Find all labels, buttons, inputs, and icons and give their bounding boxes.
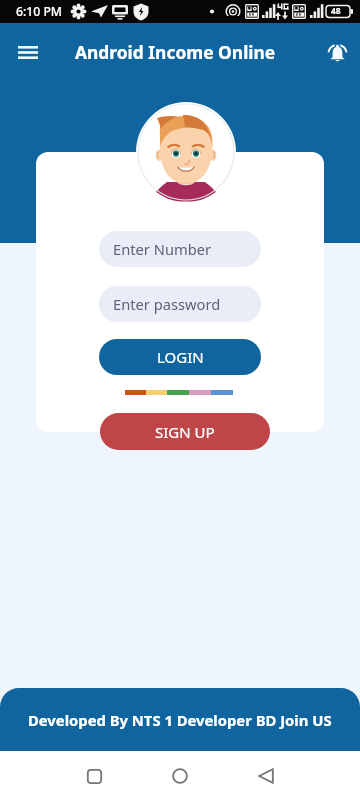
button[interactable]: Open navigation menu (9, 33, 47, 71)
staticText: 6:10 PM (16, 3, 63, 20)
staticText: LOGIN (157, 347, 204, 367)
button[interactable]: SIGN UP (100, 413, 270, 450)
button[interactable]: Developed By NTS 1 Developer BD Join US (0, 688, 360, 751)
staticText: 48 (331, 5, 341, 17)
button[interactable]: LOGIN (99, 339, 261, 375)
staticText: SIGN UP (155, 422, 215, 442)
button[interactable]: Notifications (318, 33, 356, 71)
button[interactable]: Back (246, 756, 286, 796)
button[interactable]: Enter password (99, 286, 261, 322)
button[interactable]: Recent apps (74, 756, 114, 796)
staticText: Enter Number (113, 239, 212, 259)
staticText: Android Income Online (75, 40, 276, 64)
button[interactable]: Home (160, 756, 200, 796)
staticText: Developed By NTS 1 Developer BD Join US (28, 710, 332, 730)
staticText: Enter password (113, 294, 221, 314)
button[interactable]: Enter Number (99, 231, 261, 267)
